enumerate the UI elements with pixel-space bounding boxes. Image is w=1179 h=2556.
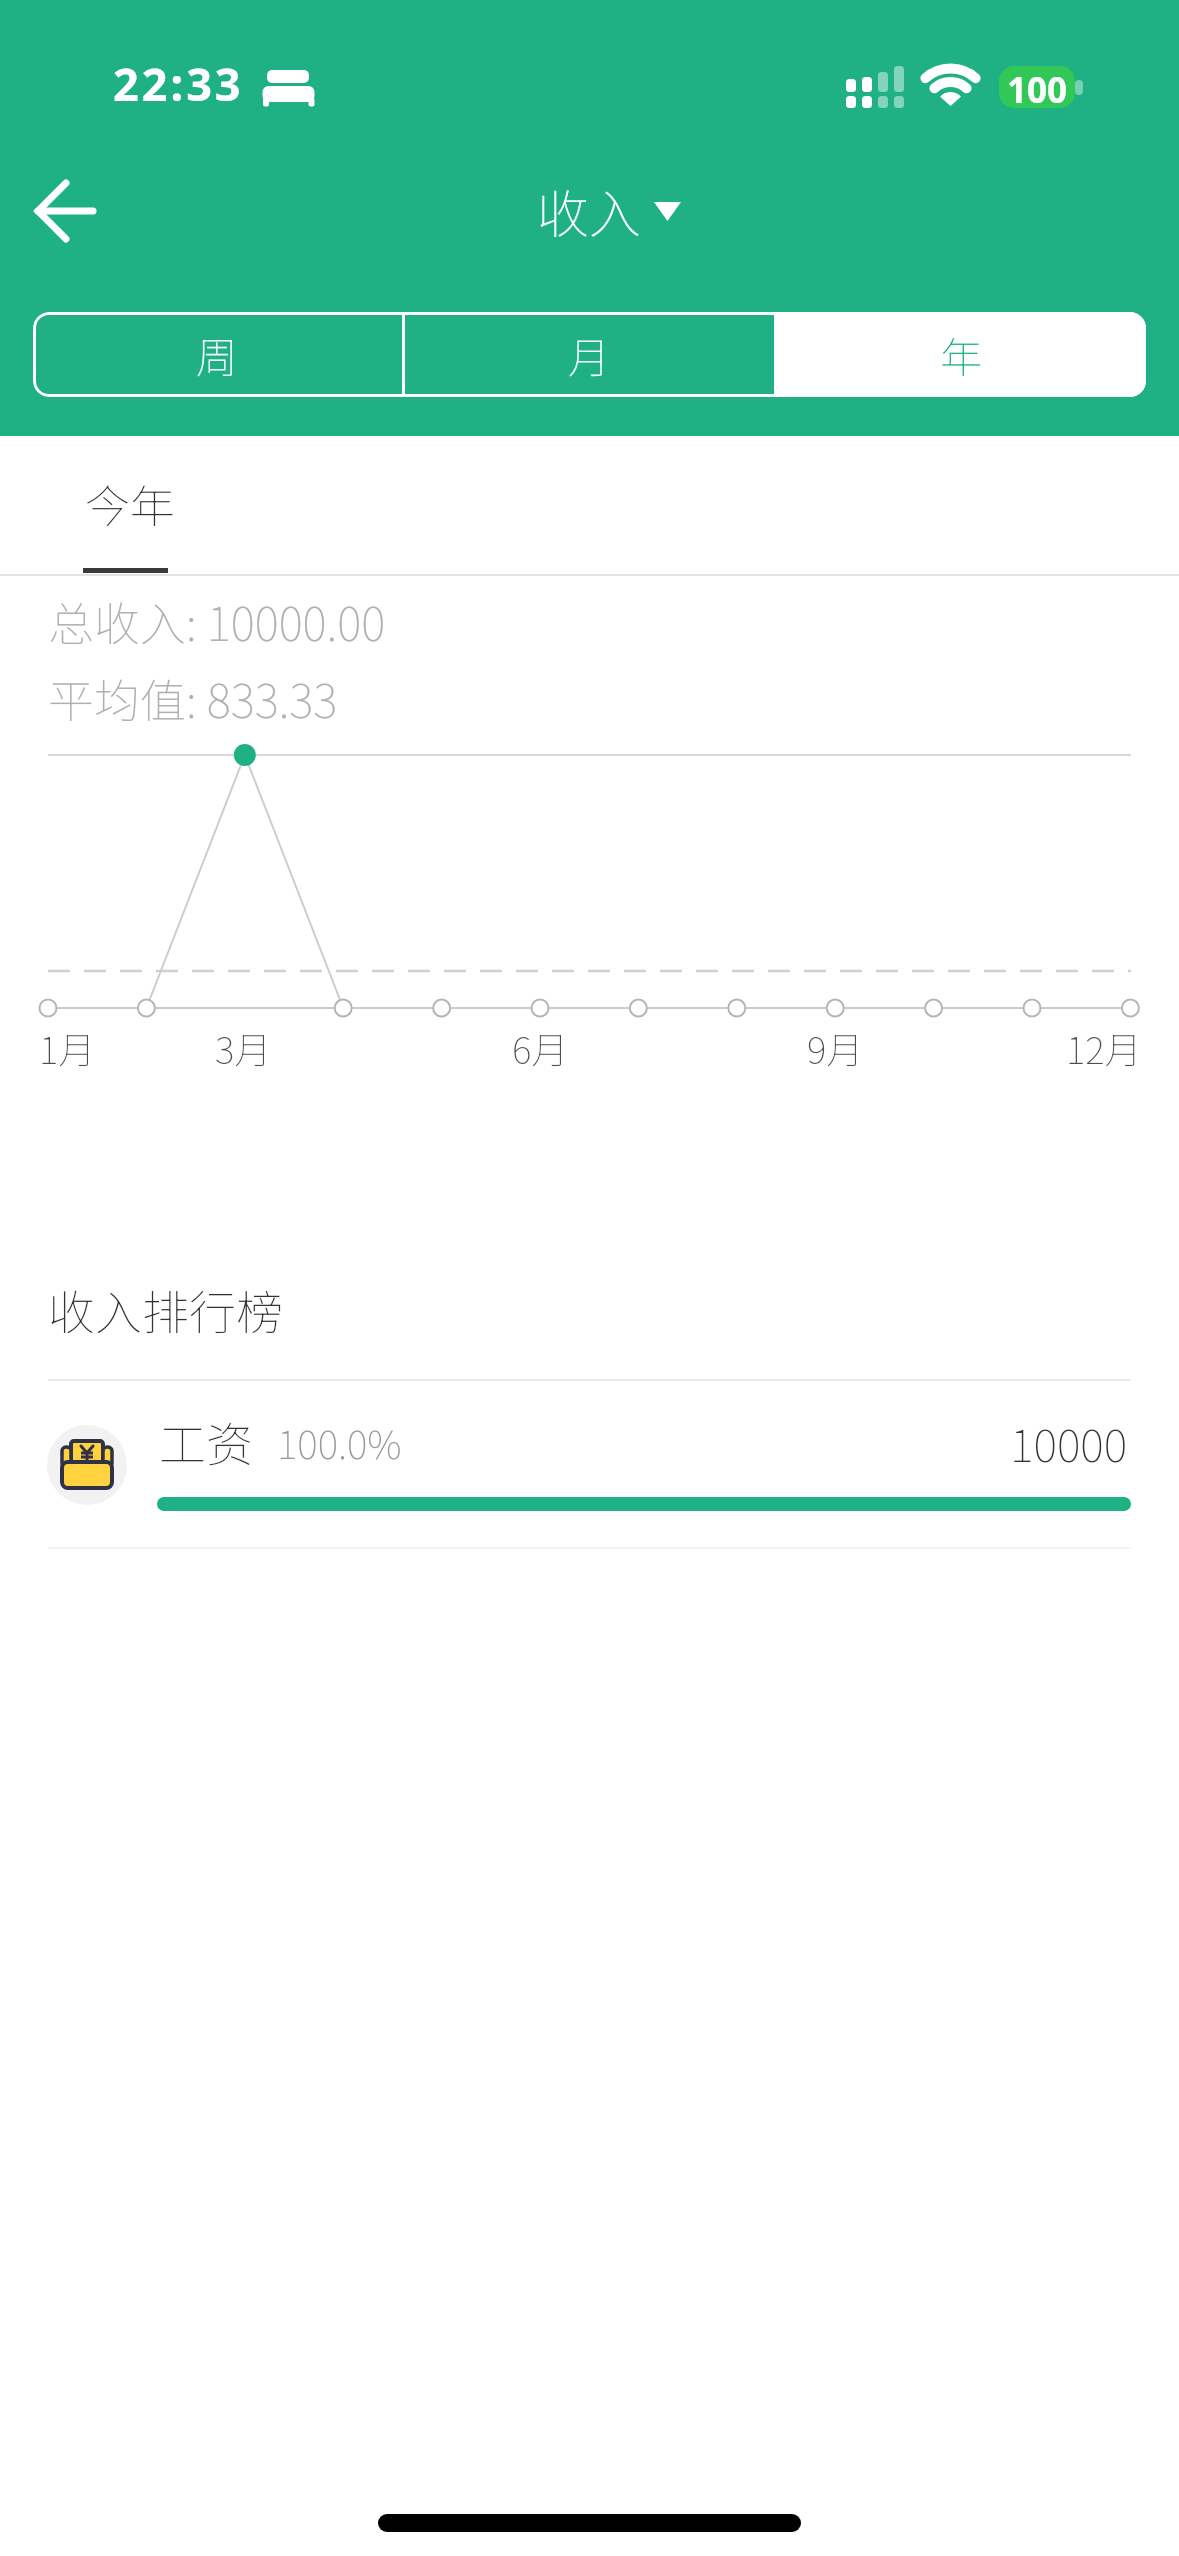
staticText: 3月 — [215, 1021, 272, 1075]
staticText: 收入 — [537, 173, 642, 248]
staticText: 周 — [196, 324, 239, 385]
staticText: 22:33 — [113, 53, 244, 114]
staticText: 10000 — [1010, 1410, 1128, 1475]
staticText: 总收入: 10000.00 — [48, 588, 386, 655]
button[interactable]: 月 — [405, 312, 774, 397]
button[interactable]: 周 — [33, 312, 402, 397]
staticText: 100.0% — [277, 1414, 402, 1470]
staticText: 平均值: 833.33 — [48, 665, 338, 732]
staticText: 收入排行榜 — [48, 1275, 283, 1343]
staticText: 12月 — [1066, 1021, 1142, 1075]
staticText: 1月 — [39, 1021, 96, 1075]
button[interactable]: 收入 — [498, 173, 681, 248]
button[interactable] — [0, 1396, 1179, 1536]
staticText: 月 — [568, 324, 611, 385]
staticText: 9月 — [807, 1021, 864, 1075]
button[interactable] — [20, 165, 120, 260]
button[interactable]: 年 — [777, 312, 1146, 397]
staticText: 工资 — [159, 1407, 253, 1475]
staticText: 今年 — [85, 471, 176, 536]
staticText: 年 — [940, 324, 983, 385]
staticText: 100 — [1007, 66, 1068, 108]
staticText: 6月 — [512, 1021, 569, 1075]
